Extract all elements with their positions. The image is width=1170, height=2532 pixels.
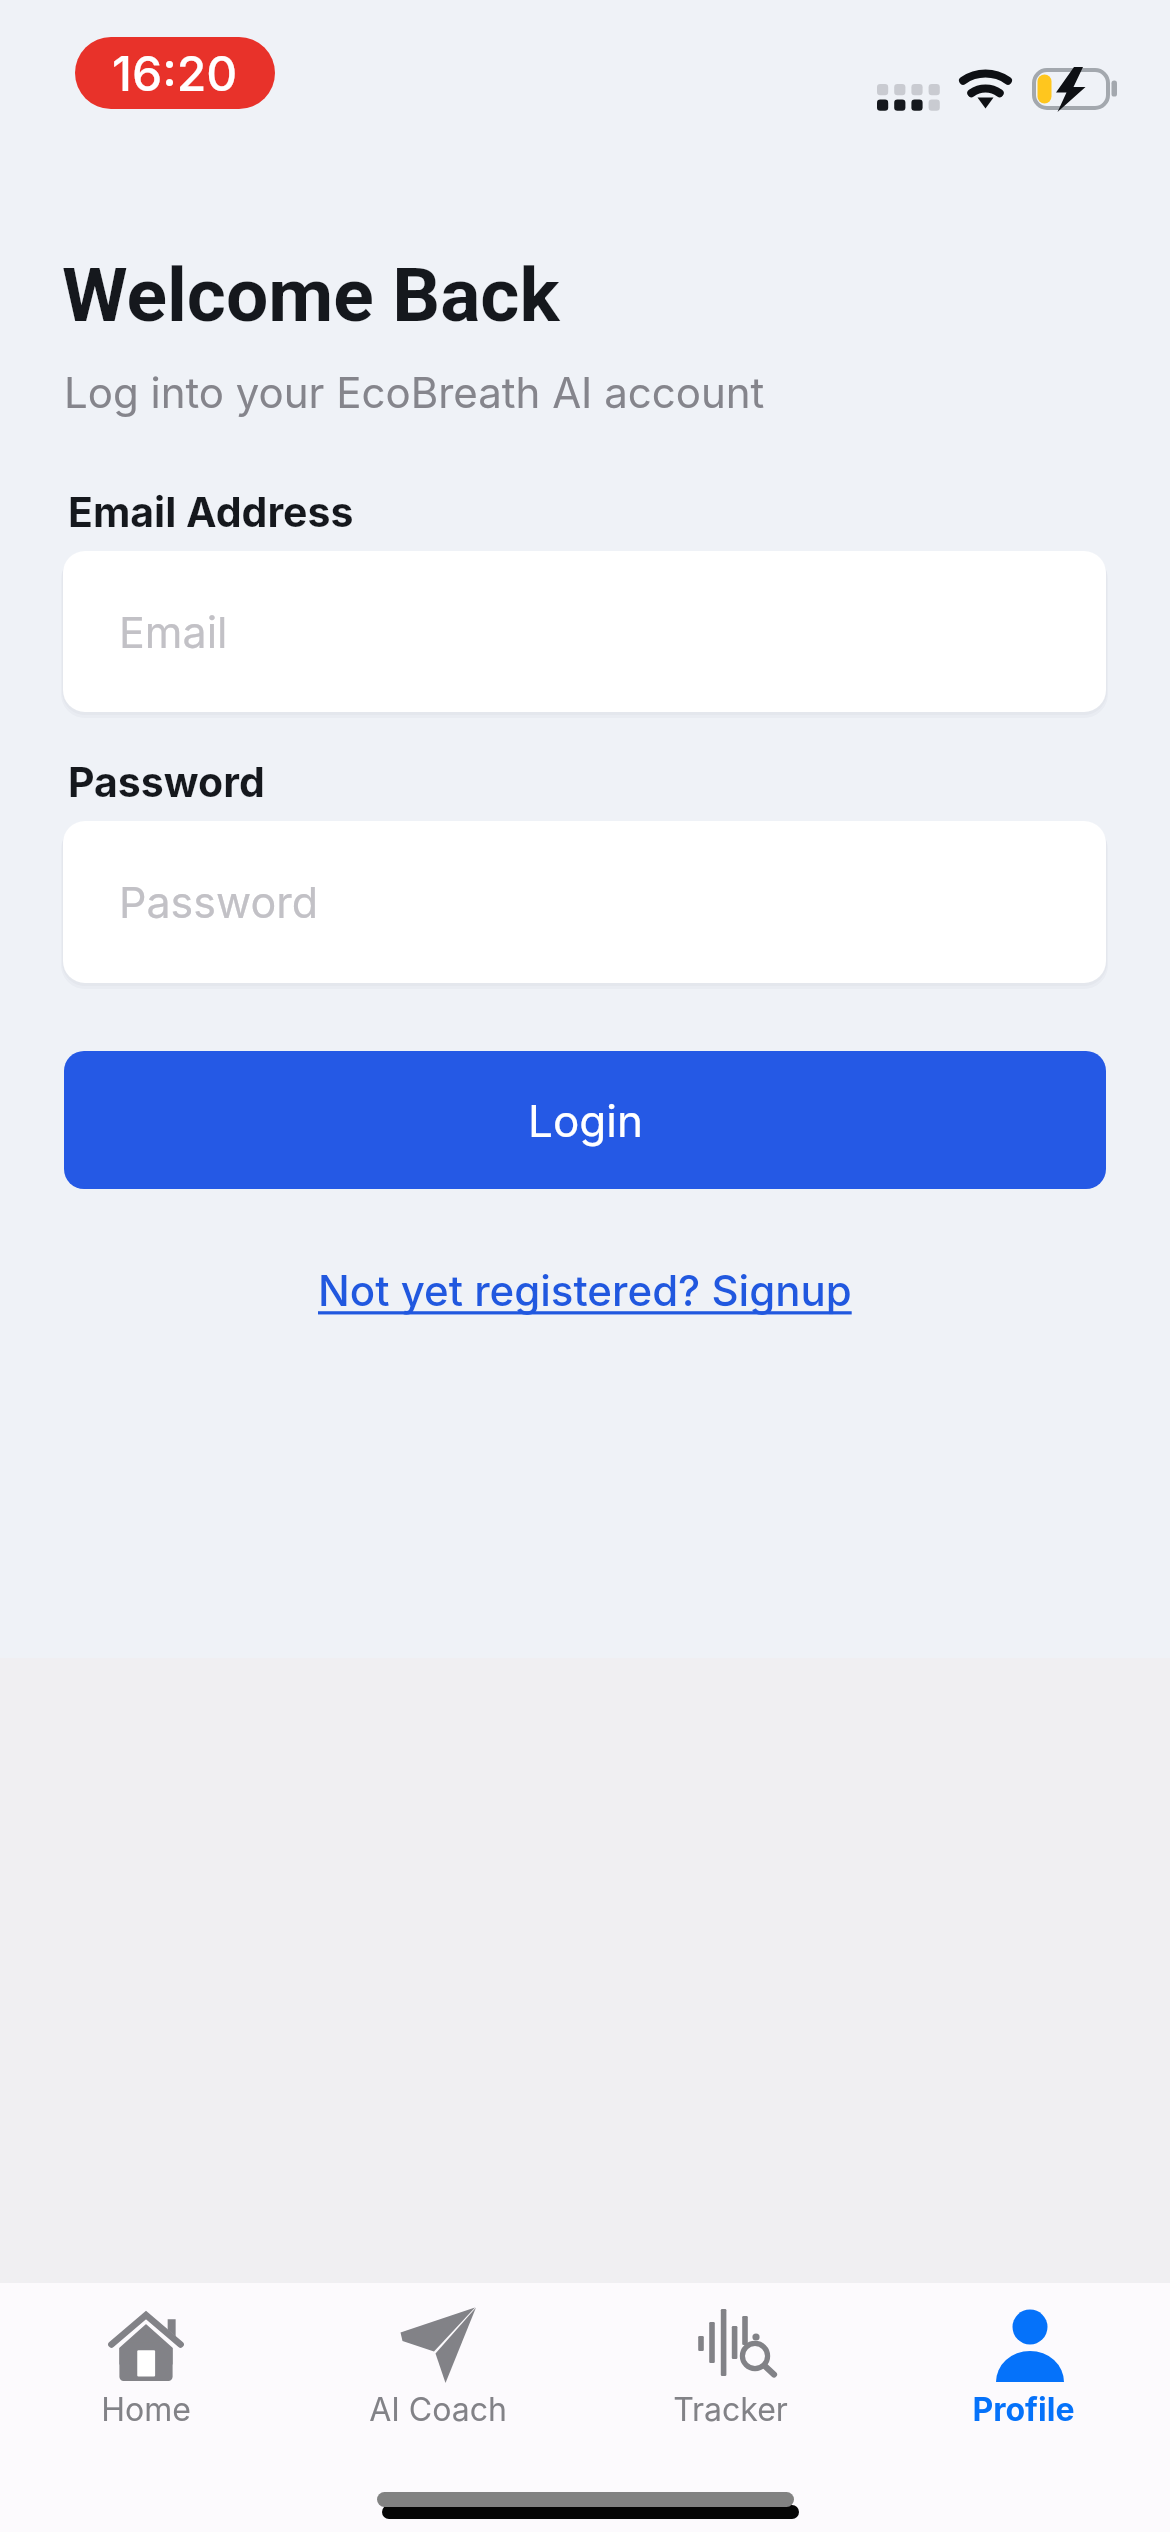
staticText: 16:20: [112, 44, 238, 102]
button[interactable]: Password: [63, 821, 1106, 983]
button[interactable]: Email: [63, 551, 1106, 712]
staticText: Email: [119, 606, 228, 658]
button[interactable]: Home: [0, 2283, 292, 2443]
staticText: Profile: [972, 2390, 1075, 2429]
staticText: Welcome Back: [62, 251, 560, 339]
staticText: Home: [101, 2390, 191, 2429]
other: AI Coach: [400, 2306, 477, 2384]
staticText: AI Coach: [369, 2390, 507, 2429]
staticText: Email Address: [68, 487, 354, 537]
other: Profile: [995, 2310, 1065, 2382]
staticText: Password: [119, 876, 319, 928]
staticText: Not yet registered? Signup: [318, 1265, 852, 1316]
button[interactable]: Profile: [877, 2283, 1170, 2443]
staticText: Login: [528, 1094, 643, 1147]
other: Home: [108, 2312, 184, 2381]
staticText: Tracker: [673, 2390, 788, 2429]
other: Tracker: [698, 2309, 778, 2377]
staticText: Password: [68, 757, 265, 807]
button[interactable]: Login: [64, 1051, 1106, 1189]
button[interactable]: Not yet registered? Signup: [318, 1265, 852, 1316]
button[interactable]: Tracker: [584, 2283, 877, 2443]
button[interactable]: AI Coach: [292, 2283, 584, 2443]
staticText: Log into your EcoBreath AI account: [64, 367, 765, 418]
